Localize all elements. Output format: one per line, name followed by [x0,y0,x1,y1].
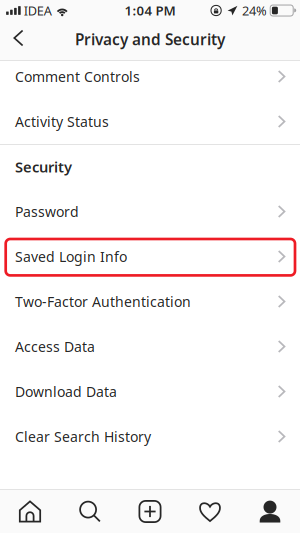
staticText: 1:04 PM [124,1,175,19]
staticText: Activity Status [15,112,109,131]
button[interactable]: Activity Status [0,99,300,144]
staticText: Download Data [15,382,117,401]
button[interactable]: Saved Login Info [0,234,300,279]
staticText: Password [15,202,79,221]
button[interactable]: Home [0,490,60,533]
staticText: Comment Controls [15,67,140,86]
staticText: IDEA [24,2,52,19]
staticText: Security [15,157,72,177]
button[interactable]: Password [0,189,300,234]
staticText: Access Data [15,337,95,356]
button[interactable]: Access Data [0,324,300,369]
staticText: Saved Login Info [15,247,127,266]
staticText: Privacy and Security [75,29,225,50]
staticText: Clear Search History [15,427,151,446]
button[interactable]: Two-Factor Authentication [0,279,300,324]
button[interactable]: Search [60,490,120,533]
button[interactable]: Back [0,23,40,58]
button[interactable]: Comment Controls [0,54,300,99]
staticText: 24% [242,2,267,19]
button[interactable]: Activity [180,490,240,533]
button[interactable]: New post [120,490,180,533]
button[interactable]: Profile [240,490,300,533]
button[interactable]: Clear Search History [0,414,300,459]
staticText: Two-Factor Authentication [15,292,191,311]
button[interactable]: Download Data [0,369,300,414]
